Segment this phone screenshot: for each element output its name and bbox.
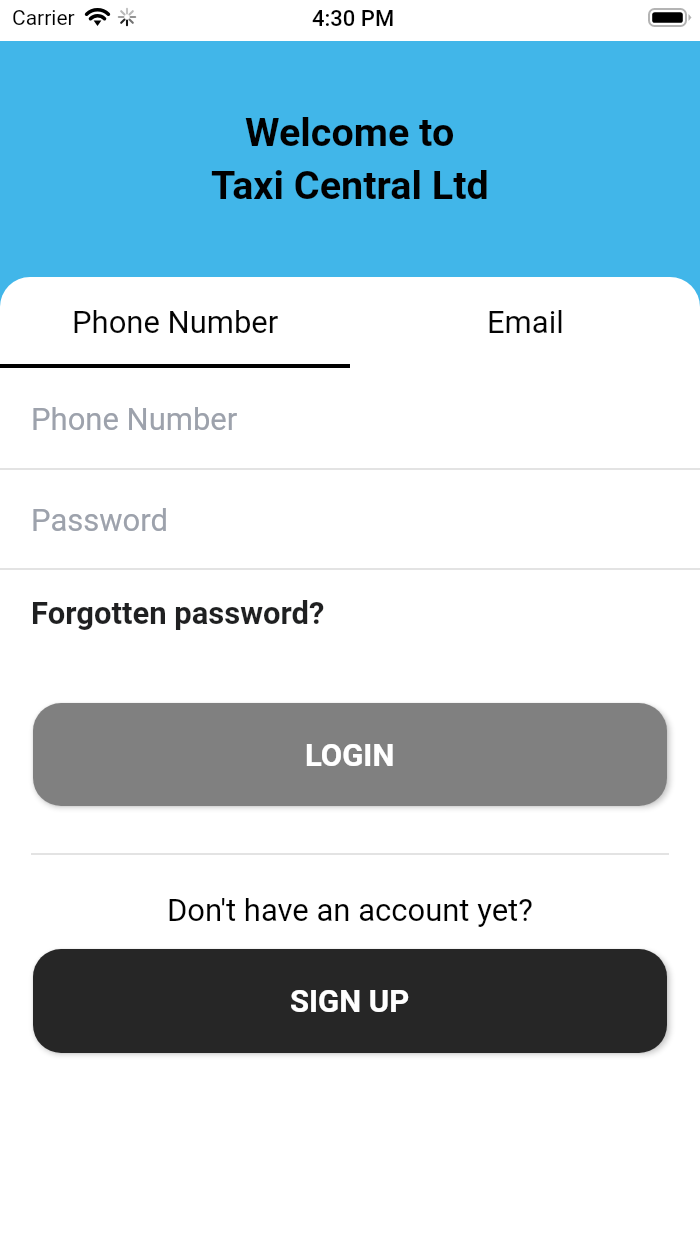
button[interactable]: Password <box>0 502 700 568</box>
button[interactable]: Forgotten password? <box>0 588 700 635</box>
staticText: Password <box>31 502 168 538</box>
staticText: Email <box>487 304 564 340</box>
staticText: Welcome to <box>245 109 455 155</box>
staticText: Taxi Central Ltd <box>211 162 489 208</box>
other: Battery full <box>648 8 692 27</box>
staticText: Phone Number <box>31 401 238 437</box>
other: Wi-Fi <box>85 7 110 26</box>
staticText: 4:30 PM <box>312 6 395 32</box>
button[interactable]: LOGIN <box>33 703 667 806</box>
staticText: Don't have an account yet? <box>167 892 533 928</box>
staticText: SIGN UP <box>290 983 410 1019</box>
staticText: LOGIN <box>305 737 395 773</box>
staticText: Carrier <box>12 6 75 31</box>
button[interactable]: Email <box>350 277 700 368</box>
staticText: Forgotten password? <box>31 595 325 631</box>
other: Loading <box>118 8 136 26</box>
button[interactable]: Phone Number <box>0 277 350 368</box>
staticText: Phone Number <box>72 304 279 340</box>
button[interactable]: Phone Number <box>0 401 700 468</box>
button[interactable]: SIGN UP <box>33 949 667 1053</box>
